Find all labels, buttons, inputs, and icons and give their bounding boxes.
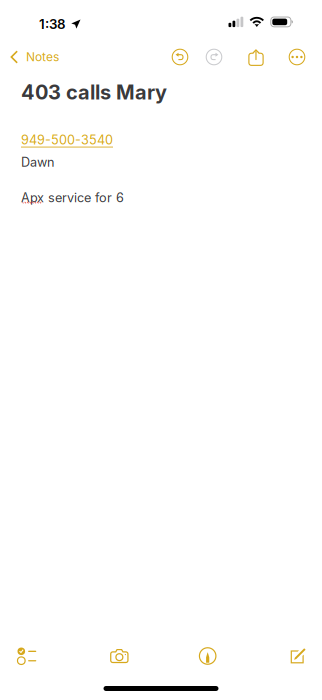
button[interactable]: Undo xyxy=(165,42,195,72)
staticText: 949-500-3540 xyxy=(21,132,113,147)
staticText: 403 calls Mary xyxy=(21,80,167,104)
staticText: 1:38 xyxy=(39,16,66,32)
button[interactable]: Markup xyxy=(182,640,234,672)
staticText: Notes xyxy=(26,50,59,64)
staticText: Apx service for 6 xyxy=(21,190,124,205)
button[interactable]: Checklist xyxy=(5,640,57,672)
button[interactable]: Notes xyxy=(0,42,69,72)
button[interactable]: Redo xyxy=(199,42,229,72)
button[interactable]: New Note xyxy=(270,640,322,672)
button[interactable]: More options xyxy=(282,42,312,72)
button[interactable]: Camera xyxy=(93,640,145,672)
staticText: Dawn xyxy=(21,154,54,170)
button[interactable]: Share xyxy=(241,42,271,72)
